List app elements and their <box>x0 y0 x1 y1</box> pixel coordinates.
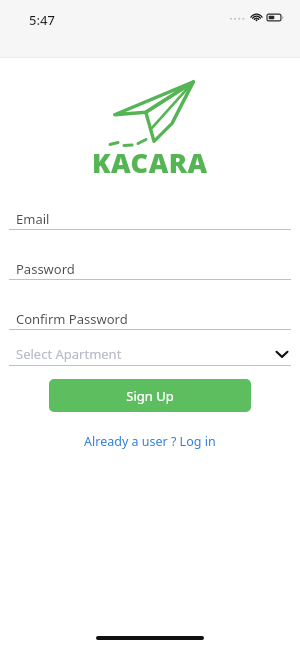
staticText: 5:47 <box>29 11 55 29</box>
button[interactable]: Already a user ? Log in <box>78 431 222 452</box>
staticText: Password <box>16 260 75 278</box>
staticText: Sign Up <box>126 387 174 405</box>
staticText: Select Apartment <box>16 345 122 363</box>
staticText: Email <box>16 210 50 228</box>
button[interactable]: Confirm Password <box>0 309 300 330</box>
button[interactable]: Email <box>0 209 300 230</box>
button[interactable]: Sign Up <box>49 379 251 412</box>
staticText: Confirm Password <box>16 310 128 328</box>
button[interactable]: Select Apartment <box>0 343 300 366</box>
staticText: Already a user ? Log in <box>84 433 216 450</box>
staticText: KACARA <box>92 144 208 181</box>
button[interactable]: Password <box>0 259 300 280</box>
